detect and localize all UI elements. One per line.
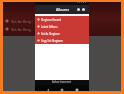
button[interactable]: Back — [46, 88, 50, 92]
staticText: Set As Ringtone — [41, 32, 60, 35]
button[interactable]: Search — [77, 8, 80, 11]
button[interactable]: Copy Set Ringtone — [35, 37, 89, 44]
button[interactable]: Set As Ringtone — [35, 30, 89, 37]
staticText: Set As Ring — [11, 27, 31, 32]
button[interactable]: Ringtone Record — [35, 16, 89, 23]
staticText: Latest Editors — [41, 25, 58, 28]
button[interactable]: Latest Editors — [35, 23, 89, 30]
staticText: Advertisement — [52, 80, 72, 84]
staticText: Ringtone Record — [41, 18, 61, 21]
button[interactable]: Home — [60, 88, 64, 92]
button[interactable]: Recents — [75, 88, 79, 92]
button[interactable]: More options — [82, 8, 85, 11]
staticText: Set As Ring — [11, 19, 31, 24]
staticText: Copy Set Ringtone — [41, 39, 63, 42]
staticText: Albums — [56, 7, 69, 12]
